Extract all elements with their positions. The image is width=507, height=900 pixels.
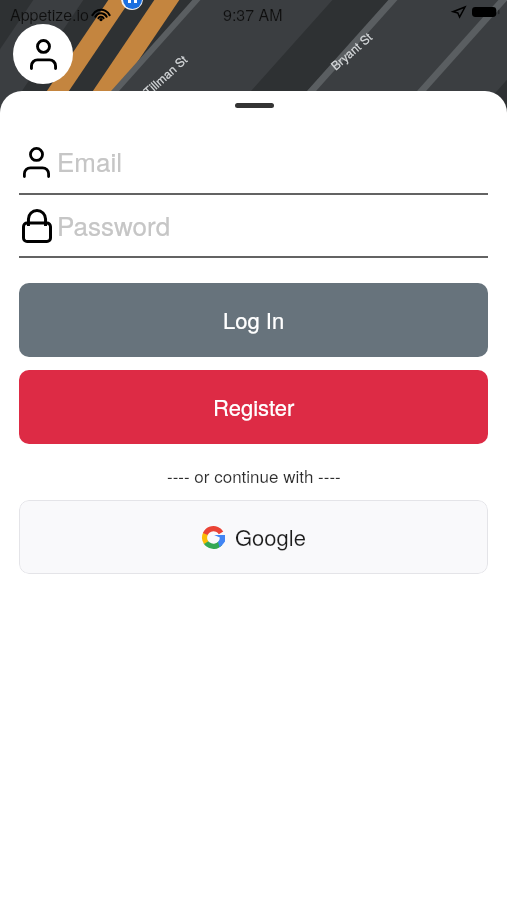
staticText: 9:37 AM — [223, 3, 283, 26]
staticText: Email — [57, 142, 123, 179]
staticText: Log In — [223, 304, 285, 336]
staticText: Appetize.io — [10, 3, 89, 26]
button[interactable]: Google — [19, 500, 488, 574]
button[interactable]: Profile — [13, 24, 73, 84]
button[interactable]: Register — [19, 370, 488, 444]
staticText: Password — [57, 206, 171, 243]
staticText: Google — [235, 521, 306, 553]
staticText: Bryant St — [327, 28, 375, 73]
button[interactable]: Log In — [19, 283, 488, 357]
staticText: Register — [213, 391, 295, 423]
staticText: ---- or continue with ---- — [167, 463, 341, 487]
staticText: Tillman St — [139, 50, 191, 99]
